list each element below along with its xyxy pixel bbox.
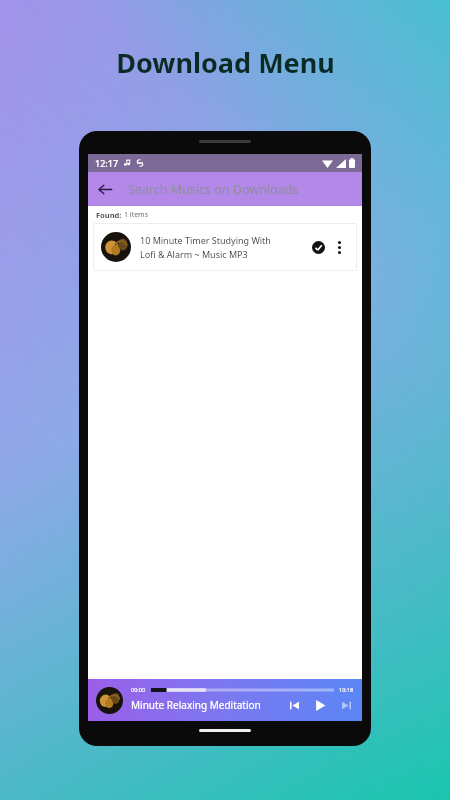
staticText: 12:17 <box>95 157 119 169</box>
button[interactable]: More options <box>329 237 349 257</box>
staticText: Found: <box>96 210 124 220</box>
staticText: 10 Minute Timer Studying With <box>140 234 271 246</box>
button[interactable]: 00:00 <box>88 679 362 721</box>
button[interactable]: Play <box>311 696 329 714</box>
staticText: 1 items <box>124 210 149 220</box>
staticText: Download Menu <box>116 44 335 81</box>
button[interactable]: Next <box>338 697 354 713</box>
staticText: Minute Relaxing Meditation <box>131 698 261 712</box>
button[interactable]: 10 Minute Timer Studying With <box>93 223 357 271</box>
button[interactable]: Previous <box>286 697 302 713</box>
staticText: 00:00 <box>131 686 146 693</box>
button[interactable]: Back <box>88 172 122 206</box>
staticText: 10:18 <box>339 686 354 693</box>
button[interactable]: Downloaded <box>307 236 329 258</box>
staticText: Lofi & Alarm ~ Music MP3 <box>140 248 248 260</box>
staticText: Search Musics on Downloads <box>128 181 299 198</box>
button[interactable]: Search Musics on Downloads <box>128 172 362 206</box>
